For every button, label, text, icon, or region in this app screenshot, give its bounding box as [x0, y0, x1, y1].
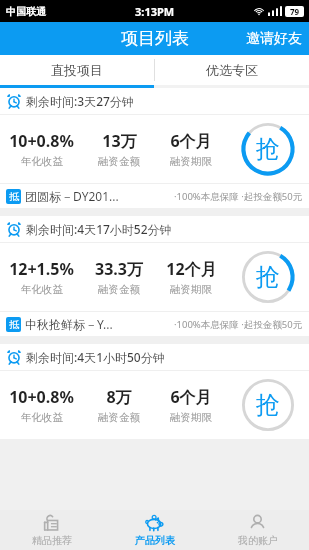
staticText: 融资期限: [170, 283, 212, 296]
staticText: 抢: [256, 134, 280, 164]
staticText: 产品列表: [135, 534, 175, 547]
staticText: 融资期限: [170, 155, 212, 168]
staticText: 融资金额: [98, 155, 140, 168]
staticText: 年化收益: [21, 411, 63, 424]
staticText: 精品推荐: [32, 534, 72, 547]
staticText: 抢: [256, 390, 280, 420]
staticText: 年化收益: [21, 283, 63, 296]
staticText: 8万: [106, 386, 132, 408]
button[interactable]: 直投项目: [0, 55, 154, 85]
staticText: 12+1.5%: [9, 258, 74, 280]
staticText: 优选专区: [206, 62, 258, 78]
staticText: 6个月: [170, 386, 212, 408]
staticText: 中秋抢鲜标－Y...: [25, 316, 113, 332]
staticText: 团圆标－DY201...: [25, 188, 119, 204]
button[interactable]: 抢: [242, 123, 294, 175]
staticText: 33.3万: [95, 258, 143, 280]
staticText: ·100%本息保障 ·起投金额50元: [174, 318, 303, 331]
staticText: 6个月: [170, 130, 212, 152]
staticText: 直投项目: [51, 62, 103, 78]
staticText: 抵: [9, 318, 19, 331]
staticText: 剩余时间:4天17小时52分钟: [26, 221, 172, 237]
button[interactable]: 邀请好友: [239, 26, 309, 52]
button[interactable]: 抢: [242, 379, 294, 431]
staticText: 中国联通: [6, 5, 46, 18]
button[interactable]: 产品列表: [103, 510, 206, 550]
staticText: ·100%本息保障 ·起投金额50元: [174, 190, 303, 203]
staticText: 79: [290, 6, 300, 17]
staticText: 10+0.8%: [9, 386, 74, 408]
button[interactable]: 精品推荐: [0, 510, 103, 550]
button[interactable]: 优选专区: [155, 55, 309, 85]
staticText: 剩余时间:3天27分钟: [26, 93, 134, 109]
staticText: 3:13PM: [135, 4, 175, 19]
button[interactable]: 抢: [242, 251, 294, 303]
staticText: 年化收益: [21, 155, 63, 168]
button[interactable]: 我的账户: [206, 510, 309, 550]
staticText: 10+0.8%: [9, 130, 74, 152]
staticText: 剩余时间:4天1小时50分钟: [26, 349, 165, 365]
staticText: 抢: [256, 262, 280, 292]
staticText: 融资期限: [170, 411, 212, 424]
staticText: 我的账户: [238, 534, 278, 547]
staticText: 融资金额: [98, 283, 140, 296]
staticText: 抵: [9, 190, 19, 203]
staticText: 邀请好友: [246, 30, 302, 48]
staticText: 融资金额: [98, 411, 140, 424]
staticText: 12个月: [166, 258, 217, 280]
staticText: 13万: [102, 130, 137, 152]
staticText: 项目列表: [121, 28, 189, 49]
